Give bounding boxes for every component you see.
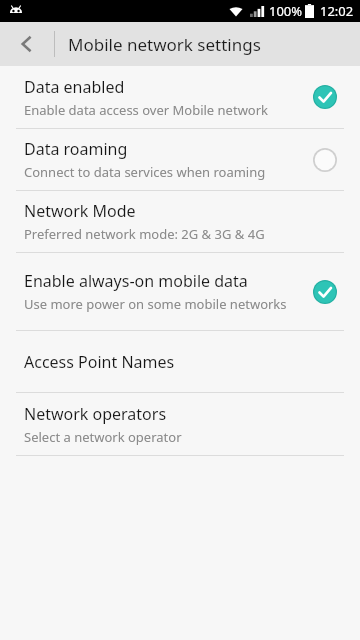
staticText: Use more power on some mobile networks — [24, 295, 287, 313]
staticText: Enable data access over Mobile network — [24, 101, 269, 119]
staticText: 12:02 — [320, 2, 354, 20]
staticText: Network Mode — [24, 200, 136, 222]
staticText: Connect to data services when roaming — [24, 163, 266, 181]
staticText: Network operators — [24, 403, 167, 425]
staticText: Data enabled — [24, 76, 125, 98]
staticText: Access Point Names — [24, 351, 175, 373]
staticText: Mobile network settings — [68, 33, 261, 56]
button[interactable]: Access Point Names — [0, 331, 360, 392]
button[interactable]: Disabled — [308, 143, 342, 177]
button[interactable]: Enabled — [308, 275, 342, 309]
button[interactable]: Data enabled — [0, 66, 360, 128]
button[interactable]: Network Mode — [0, 191, 360, 252]
button[interactable]: Enabled — [308, 80, 342, 114]
staticText: Data roaming — [24, 138, 128, 160]
staticText: Preferred network mode: 2G & 3G & 4G — [24, 225, 265, 243]
button[interactable]: Enable always-on mobile data — [0, 253, 360, 330]
staticText: Enable always-on mobile data — [24, 270, 248, 292]
staticText: 100% — [269, 2, 303, 20]
button[interactable]: Back — [0, 22, 54, 66]
staticText: Select a network operator — [24, 428, 182, 446]
button[interactable]: Data roaming — [0, 129, 360, 190]
button[interactable]: Network operators — [0, 393, 360, 455]
